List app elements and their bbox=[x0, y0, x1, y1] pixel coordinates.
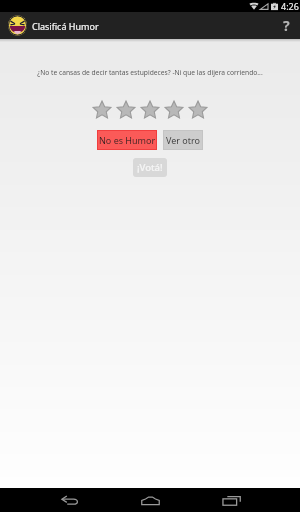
staticText: 4:26 bbox=[281, 0, 299, 12]
staticText: ? bbox=[283, 16, 290, 35]
staticText: Ver otro bbox=[166, 134, 201, 146]
button[interactable]: Ver otro bbox=[163, 130, 203, 150]
button[interactable]: Back bbox=[48, 488, 90, 512]
staticText: No es Humor bbox=[99, 134, 156, 146]
button[interactable]: Home bbox=[129, 488, 171, 512]
button[interactable]: ¡Votá! bbox=[133, 158, 167, 177]
button[interactable]: No es Humor bbox=[97, 130, 157, 150]
button[interactable]: Recents bbox=[210, 488, 252, 512]
staticText: ¡Votá! bbox=[137, 161, 163, 174]
staticText: Clasificá Humor bbox=[32, 20, 99, 32]
staticText: ¿No te cansas de decir tantas estupidece… bbox=[10, 68, 290, 77]
button[interactable]: Help bbox=[273, 12, 300, 39]
